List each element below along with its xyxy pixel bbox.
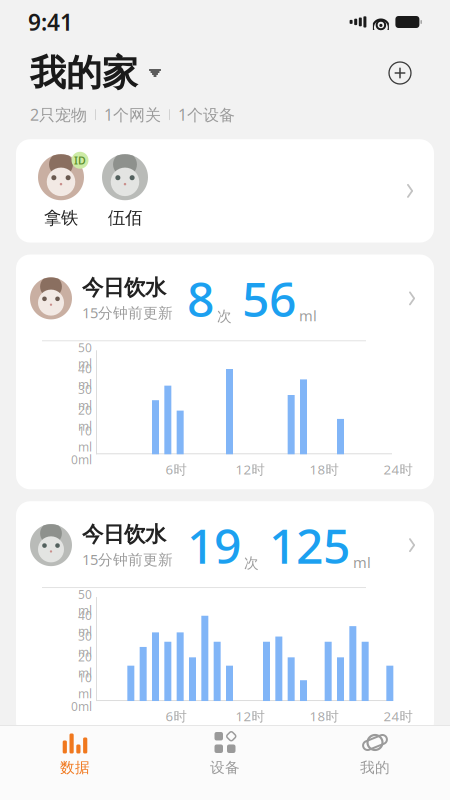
staticText: 10ml <box>78 670 92 702</box>
staticText: ml <box>353 552 371 572</box>
staticText: 19 <box>187 513 241 577</box>
staticText: 次 <box>244 554 259 572</box>
staticText: 我的家 <box>30 51 138 95</box>
staticText: 18时 <box>309 707 338 725</box>
staticText: 20ml <box>78 649 92 681</box>
staticText: 20ml <box>78 402 92 434</box>
staticText: 今日饮水 <box>82 275 166 301</box>
staticText: 0ml <box>71 698 92 714</box>
button[interactable]: 今日饮水 <box>16 501 434 736</box>
staticText: 24时 <box>383 707 412 725</box>
staticText: 30ml <box>78 628 92 660</box>
button[interactable]: ID <box>16 139 434 242</box>
staticText: ID <box>74 153 86 167</box>
staticText: 0ml <box>71 452 92 468</box>
staticText: 9:41 <box>28 7 73 37</box>
button[interactable]: 我的 <box>300 723 450 782</box>
staticText: 8 <box>187 266 214 330</box>
staticText: 6时 <box>165 707 186 725</box>
button[interactable]: 设备 <box>150 723 300 782</box>
staticText: 15分钟前更新 <box>82 549 173 569</box>
button[interactable]: 今日饮水 <box>16 254 434 489</box>
staticText: 设备 <box>210 758 240 776</box>
staticText: 1个网关 <box>104 104 161 125</box>
staticText: 10ml <box>78 423 92 455</box>
staticText: 30ml <box>78 381 92 413</box>
staticText: 次 <box>217 307 232 325</box>
staticText: 伍佰 <box>108 207 142 228</box>
staticText: 24时 <box>383 460 412 478</box>
staticText: 40ml <box>78 360 92 392</box>
staticText: 数据 <box>60 758 90 776</box>
staticText: 12时 <box>235 460 264 478</box>
staticText: 15分钟前更新 <box>82 303 173 322</box>
staticText: ml <box>299 306 317 325</box>
button[interactable]: 数据 <box>0 723 150 782</box>
button[interactable]: Add <box>380 53 420 93</box>
staticText: 今日饮水 <box>82 521 166 547</box>
staticText: 12时 <box>235 707 264 725</box>
staticText: 1个设备 <box>178 104 235 125</box>
staticText: 50ml <box>78 586 92 618</box>
staticText: 2只宠物 <box>30 104 87 125</box>
staticText: 6时 <box>165 460 186 478</box>
staticText: 125 <box>269 513 350 577</box>
staticText: 拿铁 <box>44 207 78 228</box>
staticText: 56 <box>242 266 296 330</box>
staticText: 我的 <box>360 758 390 776</box>
staticText: 40ml <box>78 607 92 639</box>
staticText: 18时 <box>309 460 338 478</box>
button[interactable]: 我的家 <box>30 47 161 99</box>
staticText: 50ml <box>78 340 92 372</box>
